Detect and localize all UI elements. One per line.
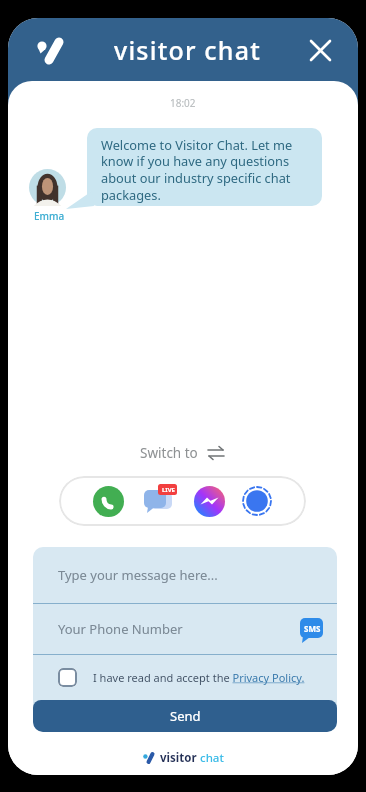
button[interactable]: Type your message here...	[33, 547, 337, 603]
staticText: visitor chat	[114, 33, 261, 67]
button[interactable]	[241, 485, 273, 517]
button[interactable]: Your Phone Number	[33, 604, 337, 654]
button[interactable]	[302, 32, 338, 68]
staticText: Welcome to Visitor Chat. Let me know if …	[101, 136, 293, 204]
button[interactable]	[93, 486, 124, 517]
staticText: Your Phone Number	[58, 620, 183, 638]
button[interactable]	[58, 668, 77, 687]
staticText: SMS	[304, 623, 321, 634]
staticText: Emma	[34, 209, 65, 223]
button[interactable]: I have read and accept the Privacy Polic…	[93, 670, 305, 685]
staticText: Switch to	[140, 444, 198, 462]
button[interactable]	[194, 486, 225, 517]
staticText: 18:02	[170, 96, 196, 110]
staticText: visitor	[160, 750, 197, 766]
button[interactable]: Send	[33, 700, 337, 732]
staticText: Type your message here...	[58, 566, 218, 584]
staticText: LIVE	[162, 486, 175, 494]
button[interactable]: LIVE	[142, 484, 178, 518]
staticText: chat	[200, 750, 224, 766]
staticText: Send	[170, 707, 201, 725]
